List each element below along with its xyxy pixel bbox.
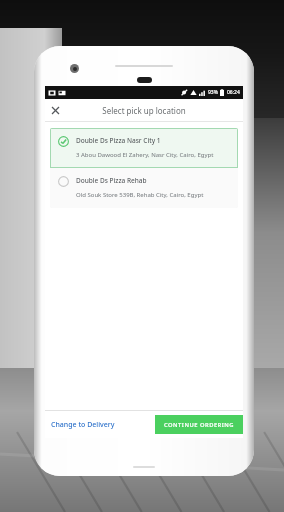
button[interactable]: Double Ds Pizza Rehab [50,168,238,208]
button[interactable]: Change to Delivery [45,415,121,435]
staticText: Double Ds Pizza Nasr City 1 [76,136,161,145]
staticText: 3 Abou Dawood El Zahery, Nasr City, Cair… [76,151,214,159]
staticText: Double Ds Pizza Rehab [76,176,147,185]
staticText: 06:24 [227,89,240,96]
staticText: Old Souk Store 539B, Rehab City, Cairo, … [76,191,204,199]
staticText: 93% [208,89,218,96]
staticText: Change to Delivery [51,420,115,430]
staticText: Select pick up location [102,105,186,116]
button[interactable]: Close [45,100,65,120]
staticText: CONTINUE ORDERING [164,421,235,429]
button[interactable]: Double Ds Pizza Nasr City 1 [50,128,238,168]
button[interactable]: CONTINUE ORDERING [155,415,243,434]
